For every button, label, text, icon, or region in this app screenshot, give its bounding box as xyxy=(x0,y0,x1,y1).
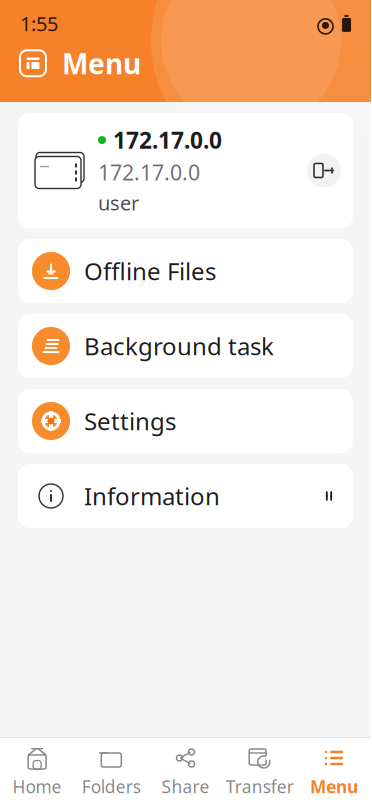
staticText: 1:55 xyxy=(20,10,58,37)
staticText: user xyxy=(98,189,139,216)
button[interactable]: Settings xyxy=(18,389,353,453)
staticText: Offline Files xyxy=(84,255,216,287)
button[interactable]: Folders xyxy=(74,738,148,800)
button[interactable]: 172.17.0.0 xyxy=(18,113,353,228)
staticText: Menu xyxy=(62,45,141,82)
button[interactable]: Information xyxy=(18,464,353,528)
button[interactable]: Transfer xyxy=(223,738,297,800)
staticText: Folders xyxy=(82,775,141,798)
staticText: Information xyxy=(84,480,220,512)
button[interactable]: Menu xyxy=(297,738,371,800)
staticText: Home xyxy=(13,775,62,798)
button[interactable]: Background task xyxy=(18,314,353,378)
staticText: Share xyxy=(161,775,209,798)
staticText: Transfer xyxy=(226,775,294,798)
staticText: 172.17.0.0 xyxy=(98,158,200,186)
button[interactable]: Offline Files xyxy=(18,239,353,303)
button[interactable]: Share xyxy=(148,738,223,800)
button[interactable]: Home xyxy=(0,738,74,800)
staticText: Settings xyxy=(84,405,176,437)
staticText: Menu xyxy=(310,775,358,798)
staticText: 172.17.0.0 xyxy=(113,125,222,155)
staticText: Background task xyxy=(84,330,274,362)
